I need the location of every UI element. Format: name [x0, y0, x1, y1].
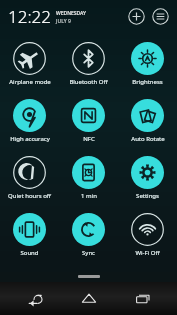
button[interactable]: Quiet hours off — [0, 149, 59, 206]
staticText: Sound — [20, 249, 39, 257]
staticText: Airplane mode — [9, 78, 51, 86]
button[interactable]: Wi-Fi Off — [118, 206, 177, 263]
button[interactable]: Back — [13, 282, 55, 315]
staticText: 1 min — [81, 192, 97, 200]
staticText: Quiet hours off — [8, 192, 51, 200]
staticText: 12:22 — [8, 5, 51, 28]
staticText: NFC — [83, 135, 95, 143]
button[interactable]: Add tile — [127, 7, 146, 26]
staticText: Auto Rotate — [131, 135, 165, 143]
button[interactable]: Menu — [151, 7, 170, 26]
button[interactable]: High accuracy — [0, 92, 59, 149]
button[interactable]: Recent apps — [122, 282, 164, 315]
button[interactable]: Brightness — [118, 35, 177, 92]
button[interactable]: Sync — [59, 206, 118, 263]
button[interactable]: NFC — [59, 92, 118, 149]
button[interactable]: Home — [68, 282, 110, 315]
staticText: Sync — [82, 249, 95, 257]
staticText: Brightness — [132, 78, 163, 86]
staticText: Wi-Fi Off — [135, 249, 160, 257]
staticText: Bluetooth Off — [69, 78, 108, 86]
button[interactable]: 1 min — [59, 149, 118, 206]
button[interactable]: Drag handle — [78, 275, 100, 278]
staticText: Settings — [136, 192, 159, 200]
staticText: JULY 9 — [56, 18, 71, 25]
button[interactable]: Bluetooth Off — [59, 35, 118, 92]
button[interactable]: Sound — [0, 206, 59, 263]
button[interactable]: Airplane mode — [0, 35, 59, 92]
staticText: High accuracy — [10, 135, 50, 143]
button[interactable]: Settings — [118, 149, 177, 206]
button[interactable]: Auto Rotate — [118, 92, 177, 149]
staticText: WEDNESDAY — [56, 10, 87, 17]
